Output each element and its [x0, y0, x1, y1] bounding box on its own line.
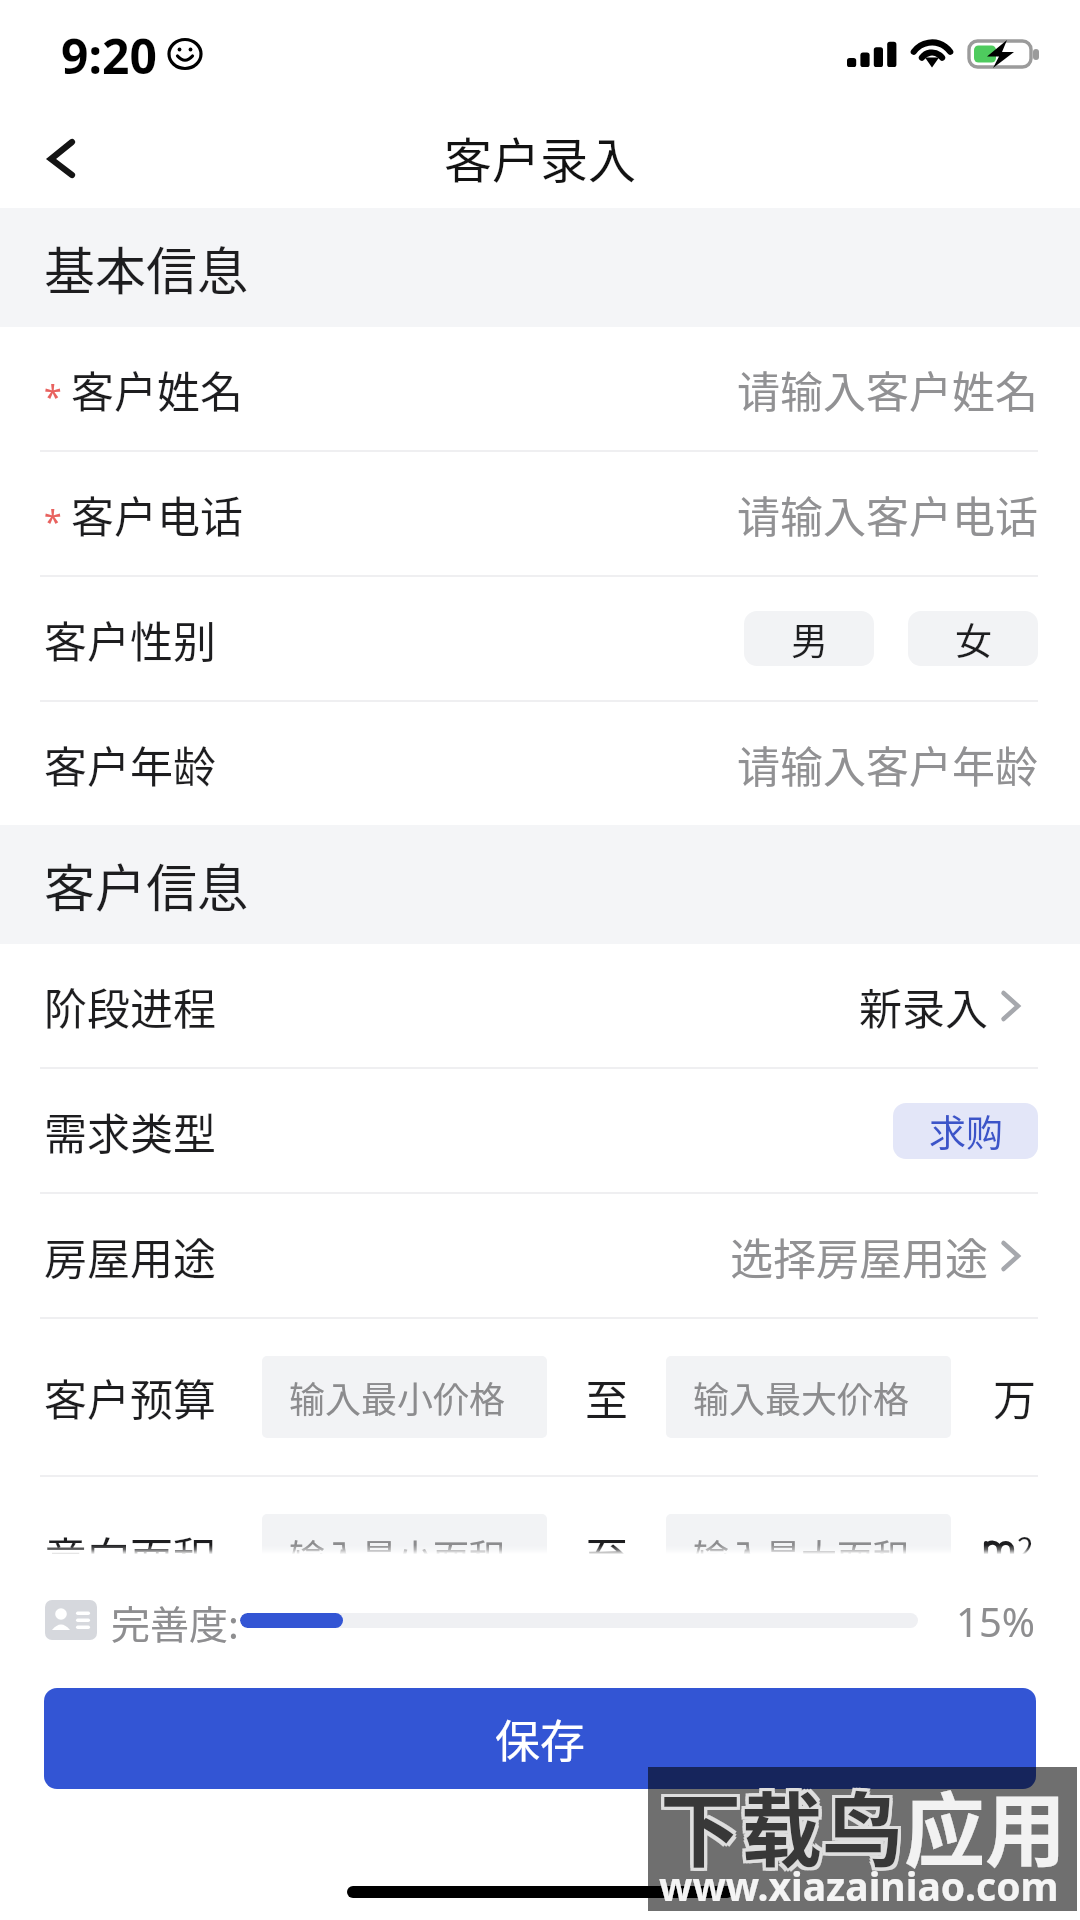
- staticText: 基本信息: [44, 231, 249, 305]
- button[interactable]: 需求类型: [0, 1069, 1080, 1192]
- staticText: 求购: [929, 1104, 1003, 1158]
- button[interactable]: *: [0, 327, 1080, 450]
- staticText: 意向面积: [44, 1524, 216, 1554]
- staticText: 下载鸟: [660, 1763, 904, 1880]
- staticText: 请输入客户年龄: [737, 733, 1038, 795]
- staticText: 男: [791, 612, 828, 666]
- staticText: 客户年龄: [44, 733, 216, 795]
- staticText: 新录入: [859, 975, 988, 1037]
- staticText: 客户性别: [44, 608, 216, 670]
- staticText: 下载鸟: [657, 1769, 901, 1886]
- staticText: 输入最小价格: [289, 1371, 506, 1423]
- staticText: 下载鸟: [660, 1766, 904, 1883]
- staticText: 下载鸟: [663, 1769, 907, 1886]
- staticText: 下载鸟: [657, 1766, 901, 1883]
- staticText: 客户录入: [444, 122, 637, 192]
- staticText: 输入最大面积: [693, 1529, 910, 1554]
- staticText: 输入最大价格: [693, 1371, 910, 1423]
- staticText: 下载鸟: [657, 1763, 901, 1880]
- button[interactable]: 输入最小价格: [262, 1356, 547, 1438]
- staticText: 应用: [904, 1766, 1067, 1883]
- staticText: 选择房屋用途: [730, 1225, 988, 1287]
- staticText: *: [44, 375, 62, 419]
- staticText: *: [44, 500, 62, 544]
- button[interactable]: 客户预算: [0, 1319, 1080, 1475]
- staticText: 2: [1017, 1524, 1034, 1554]
- staticText: www.xiazainiao.com: [659, 1859, 1059, 1912]
- staticText: 至: [585, 1524, 628, 1554]
- button[interactable]: 输入最大面积: [666, 1514, 951, 1554]
- button[interactable]: 客户年龄: [0, 702, 1080, 825]
- button[interactable]: 女: [908, 611, 1038, 666]
- staticText: 9:20: [61, 23, 157, 88]
- staticText: 下载鸟: [663, 1766, 907, 1883]
- staticText: 请输入客户姓名: [737, 358, 1038, 420]
- button[interactable]: 客户性别: [0, 577, 1080, 700]
- staticText: 万: [993, 1366, 1036, 1428]
- button[interactable]: 房屋用途: [0, 1194, 1080, 1317]
- button[interactable]: Back: [14, 113, 100, 199]
- staticText: 客户姓名: [71, 358, 243, 420]
- staticText: 请输入客户电话: [737, 483, 1038, 545]
- staticText: 至: [585, 1366, 628, 1428]
- button[interactable]: 输入最小面积: [262, 1514, 547, 1554]
- staticText: 客户预算: [44, 1366, 216, 1428]
- button[interactable]: 男: [744, 611, 874, 666]
- button[interactable]: *: [0, 452, 1080, 575]
- button[interactable]: 保存: [44, 1688, 1036, 1789]
- staticText: 保存: [495, 1706, 586, 1771]
- staticText: 下载鸟: [663, 1763, 907, 1880]
- button[interactable]: 求购: [893, 1103, 1038, 1159]
- staticText: 女: [955, 612, 992, 666]
- button[interactable]: 意向面积: [0, 1477, 1080, 1554]
- staticText: 需求类型: [44, 1100, 216, 1162]
- staticText: 输入最小面积: [289, 1529, 506, 1554]
- staticText: 阶段进程: [44, 975, 216, 1037]
- staticText: 客户信息: [44, 848, 249, 922]
- staticText: 房屋用途: [44, 1225, 216, 1287]
- staticText: 15%: [956, 1594, 1035, 1646]
- button[interactable]: 阶段进程: [0, 944, 1080, 1067]
- staticText: 完善度:: [111, 1594, 239, 1646]
- button[interactable]: 输入最大价格: [666, 1356, 951, 1438]
- staticText: 客户电话: [71, 483, 243, 545]
- staticText: 下载鸟: [660, 1769, 904, 1886]
